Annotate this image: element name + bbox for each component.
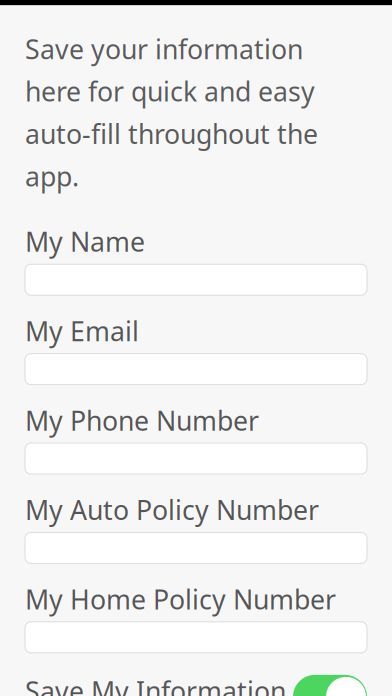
staticText: Save your information here for quick and… <box>25 31 318 194</box>
button[interactable]: My Email <box>25 354 367 385</box>
staticText: My Auto Policy Number <box>25 492 319 527</box>
staticText: My Name <box>25 224 145 259</box>
button[interactable]: My Name <box>25 264 367 295</box>
staticText: My Phone Number <box>25 403 259 438</box>
button[interactable]: My Phone Number <box>25 443 367 474</box>
button[interactable]: My Auto Policy Number <box>25 532 367 563</box>
button[interactable]: My Home Policy Number <box>25 622 367 653</box>
staticText: My Home Policy Number <box>25 581 336 617</box>
staticText: Save My Information <box>25 673 286 696</box>
staticText: My Email <box>25 313 139 349</box>
button[interactable]: Save My Information <box>25 675 367 696</box>
